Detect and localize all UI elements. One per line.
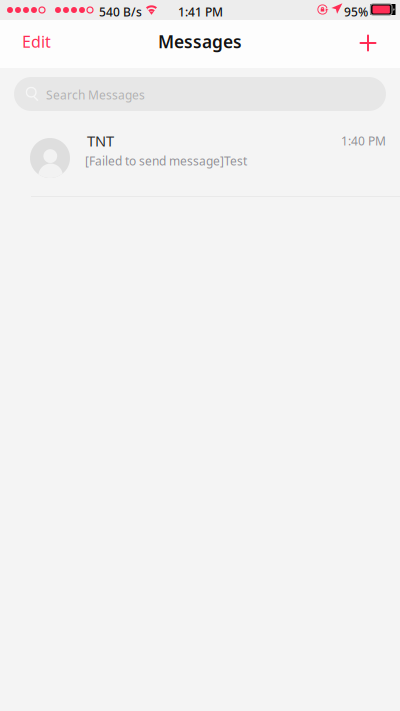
button[interactable]: New Message (348, 26, 388, 60)
button[interactable]: Search Messages (14, 77, 386, 111)
button[interactable]: Edit (11, 20, 62, 63)
staticText: Search Messages (46, 87, 145, 103)
staticText: [Failed to send message]Test (85, 153, 247, 169)
staticText: Edit (22, 31, 51, 52)
staticText: 1:40 PM (341, 133, 386, 149)
staticText: 1:41 PM (178, 4, 223, 20)
staticText: Messages (158, 30, 242, 53)
staticText: 95% (344, 4, 368, 20)
staticText: TNT (87, 131, 114, 150)
button[interactable]: TNT (0, 121, 400, 207)
staticText: 540 B/s (99, 4, 142, 20)
